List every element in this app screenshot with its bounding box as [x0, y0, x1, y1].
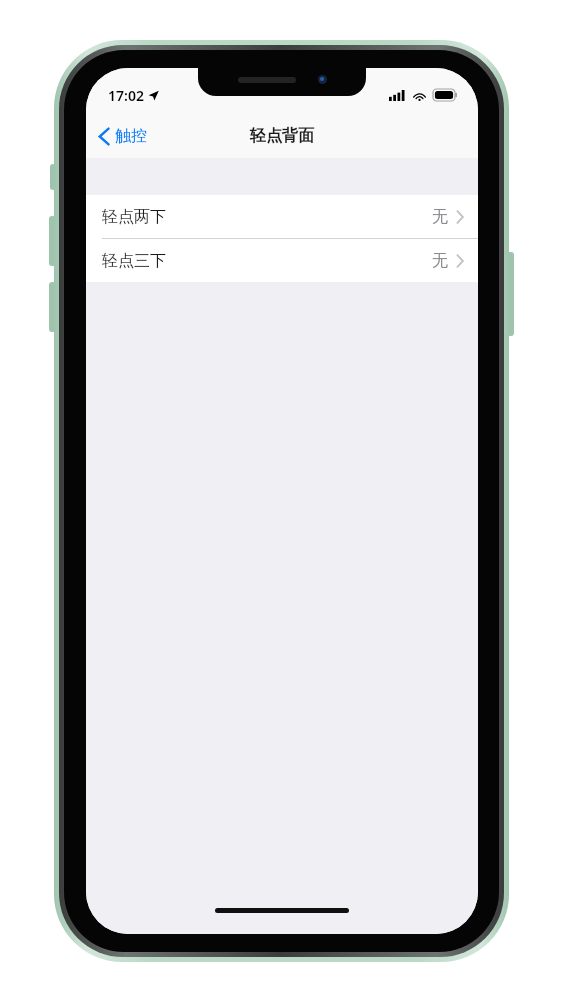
staticText: 轻点背面	[250, 126, 314, 146]
staticText: 17:02	[108, 86, 144, 105]
staticText: 无	[432, 207, 448, 227]
button[interactable]: 触控	[86, 120, 157, 152]
staticText: 无	[432, 251, 448, 271]
button[interactable]: 轻点三下	[86, 239, 478, 282]
staticText: 触控	[115, 126, 147, 146]
button[interactable]: 轻点两下	[86, 195, 478, 238]
staticText: 轻点三下	[102, 251, 166, 271]
staticText: 轻点两下	[102, 207, 166, 227]
